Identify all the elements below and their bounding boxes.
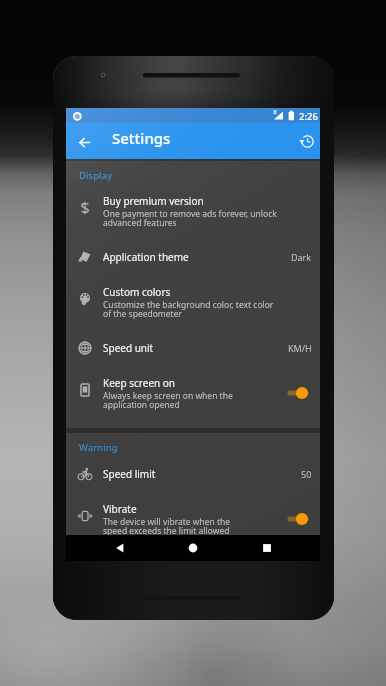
- staticText: The device will vibrate when the speed e…: [103, 516, 253, 537]
- staticText: Warning: [79, 441, 118, 454]
- button[interactable]: Toggle: [287, 511, 309, 527]
- staticText: KM/H: [288, 342, 312, 354]
- staticText: Speed unit: [103, 341, 154, 355]
- button[interactable]: Keep screen on: [66, 365, 320, 422]
- staticText: Dark: [291, 251, 312, 263]
- staticText: Custom colors: [103, 285, 171, 299]
- staticText: Always keep screen on when the applicati…: [103, 390, 253, 411]
- button[interactable]: Toggle: [287, 385, 309, 401]
- staticText: Speed limit: [103, 467, 156, 481]
- button[interactable]: Restore defaults: [297, 131, 317, 151]
- staticText: 2:26: [299, 110, 318, 123]
- staticText: Application theme: [103, 250, 189, 264]
- button[interactable]: Buy premium version: [66, 183, 320, 240]
- staticText: 50: [301, 468, 312, 480]
- staticText: Buy premium version: [103, 194, 204, 208]
- button[interactable]: Vibrate: [66, 491, 320, 535]
- staticText: Vibrate: [103, 502, 137, 516]
- staticText: Settings: [112, 128, 171, 148]
- button[interactable]: Custom colors: [66, 274, 320, 331]
- button[interactable]: Application theme: [66, 240, 320, 274]
- staticText: Display: [79, 169, 113, 182]
- staticText: Keep screen on: [103, 376, 176, 390]
- button[interactable]: Speed limit: [66, 457, 320, 491]
- staticText: Customize the background color, text col…: [103, 299, 281, 320]
- staticText: One payment to remove ads forever, unloc…: [103, 208, 281, 229]
- button[interactable]: Speed unit: [66, 331, 320, 365]
- button[interactable]: Back: [74, 132, 94, 152]
